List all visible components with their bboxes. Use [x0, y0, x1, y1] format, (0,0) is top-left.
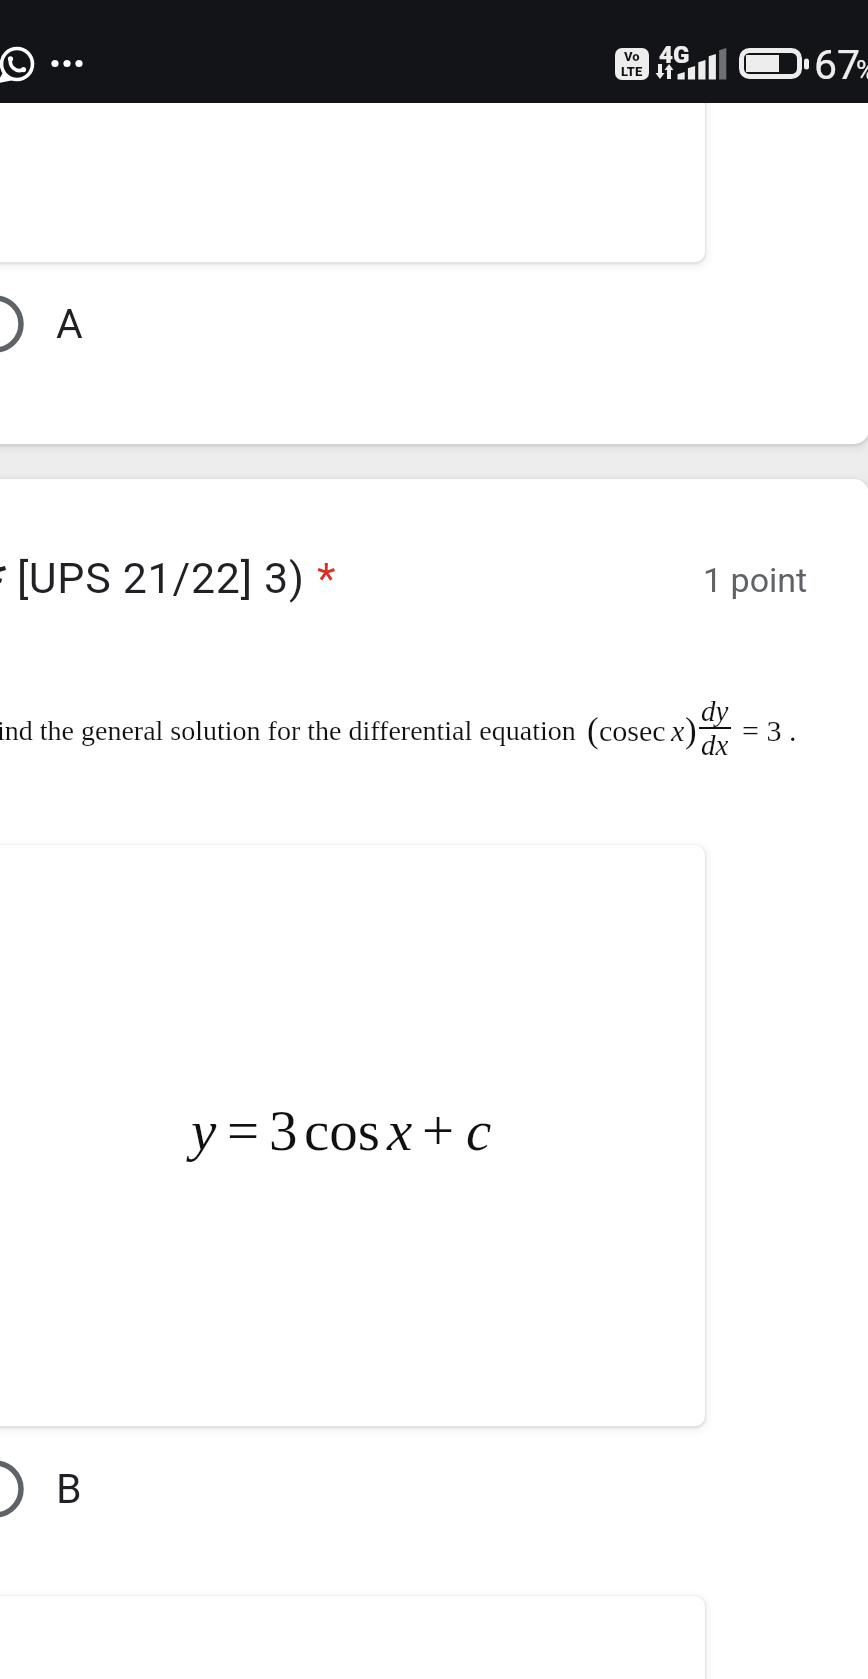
button[interactable]: Select option A	[0, 262, 868, 444]
staticText: )	[685, 711, 697, 750]
staticText: B	[56, 1465, 82, 1513]
staticText: x	[671, 714, 685, 747]
staticText: LTE	[621, 64, 643, 79]
staticText: Vo	[624, 49, 640, 64]
staticText: cosec	[599, 714, 666, 747]
staticText: (	[587, 711, 599, 750]
other: Select option A	[0, 294, 25, 354]
button[interactable]: Select option B	[0, 1426, 868, 1594]
staticText: =	[227, 1099, 260, 1162]
staticText: dx	[701, 729, 729, 761]
staticText: y	[191, 1099, 217, 1162]
staticText: *	[317, 553, 336, 603]
button[interactable]: [UPS 21/22] 3)	[0, 480, 868, 590]
staticText: +	[422, 1099, 455, 1162]
button[interactable]: More notifications	[45, 44, 97, 84]
staticText: %	[856, 55, 868, 87]
other: Select option B	[0, 1459, 25, 1519]
staticText: [UPS 21/22] 3)	[17, 553, 317, 603]
staticText: 1 point	[703, 560, 808, 600]
staticText: 4G	[659, 41, 690, 69]
staticText: = 3 .	[742, 714, 797, 747]
staticText: dy	[701, 695, 729, 727]
staticText: c	[466, 1099, 492, 1162]
staticText: x	[387, 1099, 413, 1162]
staticText: 67	[814, 41, 861, 89]
staticText: 3	[269, 1099, 298, 1162]
staticText: ind the general solution for the differe…	[0, 715, 576, 746]
staticText: cos	[304, 1099, 380, 1162]
button[interactable]: WhatsApp notification	[0, 42, 39, 86]
staticText: A	[56, 300, 83, 348]
button[interactable]: Answer image: y = 3 cos x + c	[0, 845, 868, 1426]
